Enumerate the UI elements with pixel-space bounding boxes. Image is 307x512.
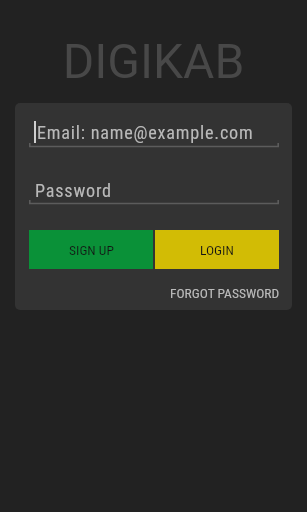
staticText: DIGIKAB bbox=[0, 33, 307, 89]
staticText: Password bbox=[35, 180, 112, 201]
button[interactable]: SIGN UP bbox=[29, 230, 153, 269]
staticText: SIGN UP bbox=[69, 242, 114, 258]
staticText: FORGOT PASSWORD bbox=[170, 285, 280, 301]
button[interactable]: LOGIN bbox=[155, 230, 279, 269]
button[interactable]: Email input field bbox=[29, 115, 279, 148]
button[interactable]: FORGOT PASSWORD bbox=[168, 281, 282, 305]
button[interactable]: Password input field bbox=[29, 173, 279, 206]
staticText: Email: name@example.com bbox=[37, 122, 254, 143]
staticText: LOGIN bbox=[200, 242, 234, 258]
